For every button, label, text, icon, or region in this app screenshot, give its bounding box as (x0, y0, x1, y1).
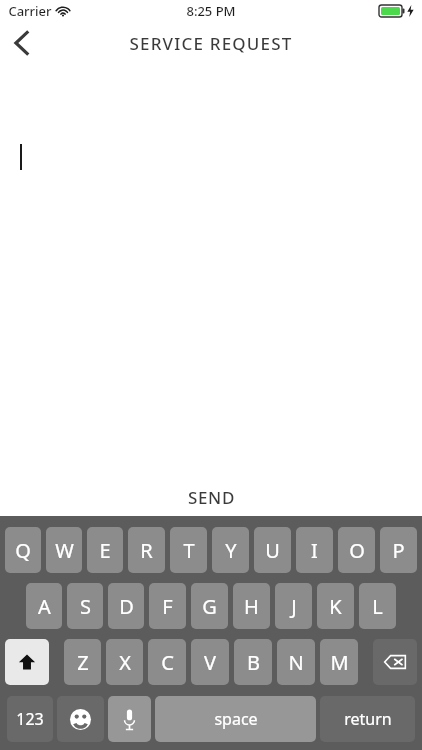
button[interactable]: R (128, 527, 165, 573)
staticText: M (330, 649, 349, 676)
staticText: U (265, 537, 280, 564)
staticText: W (55, 537, 74, 564)
button[interactable]: space (155, 696, 316, 742)
staticText: X (119, 649, 131, 676)
staticText: SEND (188, 486, 235, 509)
button[interactable]: O (338, 527, 375, 573)
button[interactable]: Q (5, 527, 41, 573)
button[interactable]: 123 (7, 696, 53, 742)
staticText: O (349, 537, 365, 564)
staticText: A (38, 593, 51, 620)
button[interactable]: P (380, 527, 417, 573)
staticText: SERVICE REQUEST (129, 32, 293, 55)
button[interactable]: U (254, 527, 291, 573)
staticText: Carrier (8, 2, 52, 20)
button[interactable]: Backspace (373, 639, 417, 685)
staticText: D (119, 593, 134, 620)
button[interactable]: E (87, 527, 123, 573)
staticText: Y (225, 537, 237, 564)
button[interactable]: M (320, 639, 358, 685)
button[interactable]: S (67, 583, 103, 629)
button[interactable]: C (148, 639, 186, 685)
staticText: Q (15, 537, 31, 564)
staticText: N (288, 649, 304, 676)
staticText: 8:25 PM (186, 2, 236, 20)
button[interactable]: X (106, 639, 143, 685)
button[interactable]: W (46, 527, 82, 573)
button[interactable]: SEND (0, 478, 422, 516)
staticText: E (99, 537, 111, 564)
staticText: R (140, 537, 153, 564)
button[interactable]: V (191, 639, 229, 685)
button[interactable]: Back (0, 22, 44, 64)
button[interactable]: T (170, 527, 207, 573)
staticText: L (372, 593, 383, 620)
staticText: K (329, 593, 342, 620)
staticText: P (392, 537, 405, 564)
staticText: Z (77, 649, 89, 676)
button[interactable]: N (277, 639, 315, 685)
button[interactable]: D (108, 583, 144, 629)
button[interactable]: B (234, 639, 272, 685)
button[interactable]: A (26, 583, 62, 629)
button[interactable]: G (191, 583, 228, 629)
button[interactable]: H (233, 583, 270, 629)
button[interactable]: F (149, 583, 186, 629)
staticText: space (214, 708, 258, 730)
staticText: I (311, 537, 318, 564)
staticText: 123 (16, 708, 44, 730)
staticText: S (80, 593, 91, 620)
staticText: T (183, 537, 195, 564)
staticText: return (344, 708, 392, 730)
button[interactable]: L (359, 583, 396, 629)
staticText: H (244, 593, 259, 620)
staticText: C (161, 649, 174, 676)
button[interactable]: Emoji (57, 696, 104, 742)
button[interactable]: Z (64, 639, 101, 685)
button[interactable]: Y (212, 527, 249, 573)
staticText: V (204, 649, 216, 676)
staticText: B (247, 649, 260, 676)
button[interactable]: I (296, 527, 333, 573)
staticText: J (291, 593, 297, 620)
button[interactable]: Dictation (108, 696, 151, 742)
button[interactable]: return (320, 696, 415, 742)
button[interactable]: K (317, 583, 354, 629)
button[interactable]: Shift (5, 639, 49, 685)
staticText: F (162, 593, 173, 620)
button[interactable]: J (275, 583, 312, 629)
staticText: G (202, 593, 217, 620)
